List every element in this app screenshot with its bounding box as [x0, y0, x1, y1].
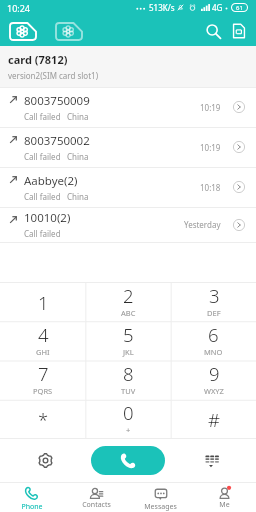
- staticText: Call failed: [24, 111, 61, 122]
- staticText: DEF: [207, 308, 221, 318]
- button[interactable]: 10010(2): [0, 207, 256, 242]
- button[interactable]: Messages: [128, 482, 192, 512]
- button[interactable]: 0: [86, 400, 171, 439]
- button[interactable]: Contacts: [64, 482, 128, 512]
- staticText: Me: [219, 500, 230, 510]
- staticText: ABC: [121, 308, 136, 318]
- staticText: Messages: [144, 502, 177, 512]
- button[interactable]: 9: [171, 361, 256, 400]
- button[interactable]: #: [171, 400, 256, 439]
- staticText: Yesterday: [184, 219, 221, 230]
- staticText: 2: [123, 283, 134, 308]
- staticText: WXYZ: [204, 386, 224, 396]
- staticText: #: [208, 407, 220, 432]
- staticText: card (7812): [8, 52, 68, 67]
- staticText: MNO: [204, 347, 223, 357]
- button[interactable]: 4: [0, 322, 86, 361]
- button[interactable]: 1: [0, 282, 86, 322]
- staticText: 1: [38, 290, 49, 315]
- button[interactable]: Me: [192, 482, 256, 512]
- button[interactable]: Call details: [232, 218, 246, 232]
- button[interactable]: Switch SIM card: [225, 17, 253, 45]
- button[interactable]: *: [0, 400, 86, 439]
- staticText: Aabbye(2): [24, 173, 78, 189]
- staticText: China: [67, 151, 89, 162]
- staticText: 8003750009: [24, 93, 90, 109]
- button[interactable]: Call details: [232, 100, 246, 114]
- button[interactable]: SIM 2: [55, 22, 83, 41]
- button[interactable]: Search: [199, 17, 227, 45]
- button[interactable]: Aabbye(2): [0, 167, 256, 207]
- button[interactable]: Call: [91, 446, 165, 475]
- staticText: 5: [123, 322, 134, 347]
- staticText: 10:24: [7, 2, 31, 14]
- staticText: TUV: [121, 386, 136, 396]
- staticText: 4: [38, 322, 49, 347]
- staticText: 4G: [212, 2, 223, 13]
- staticText: GHI: [36, 347, 50, 357]
- staticText: 10010(2): [24, 210, 71, 226]
- staticText: PQRS: [33, 386, 53, 396]
- button[interactable]: 8: [86, 361, 171, 400]
- staticText: 9: [209, 361, 220, 386]
- staticText: version2(SIM card slot1): [8, 70, 99, 81]
- button[interactable]: Call details: [232, 140, 246, 154]
- button[interactable]: 3: [171, 282, 256, 322]
- button[interactable]: Dial settings: [31, 446, 60, 475]
- staticText: 10:19: [200, 142, 221, 153]
- button[interactable]: Hide keypad: [196, 446, 225, 475]
- staticText: Call failed: [24, 151, 61, 162]
- button[interactable]: 8003750002: [0, 127, 256, 167]
- staticText: JKL: [123, 347, 134, 357]
- staticText: 7: [38, 361, 49, 386]
- staticText: Contacts: [82, 500, 111, 510]
- staticText: +: [126, 425, 131, 435]
- staticText: 8003750002: [24, 133, 90, 149]
- staticText: China: [67, 191, 89, 202]
- staticText: 0: [123, 400, 134, 425]
- button[interactable]: Call details: [232, 180, 246, 194]
- staticText: 6: [208, 322, 219, 347]
- button[interactable]: Phone: [0, 482, 64, 512]
- staticText: *: [38, 407, 49, 432]
- staticText: 513K/s: [149, 2, 175, 13]
- button[interactable]: 7: [0, 361, 86, 400]
- button[interactable]: 5: [86, 322, 171, 361]
- staticText: China: [67, 111, 89, 122]
- staticText: Call failed: [24, 191, 61, 202]
- button[interactable]: 6: [171, 322, 256, 361]
- staticText: Phone: [21, 502, 43, 512]
- staticText: 3: [209, 283, 220, 308]
- staticText: 10:18: [200, 182, 221, 193]
- button[interactable]: SIM 1: [9, 22, 37, 41]
- staticText: 10:19: [200, 102, 221, 113]
- staticText: Call failed: [24, 228, 61, 239]
- staticText: 8: [123, 361, 134, 386]
- button[interactable]: 2: [86, 282, 171, 322]
- button[interactable]: 8003750009: [0, 87, 256, 127]
- staticText: 61: [236, 4, 243, 12]
